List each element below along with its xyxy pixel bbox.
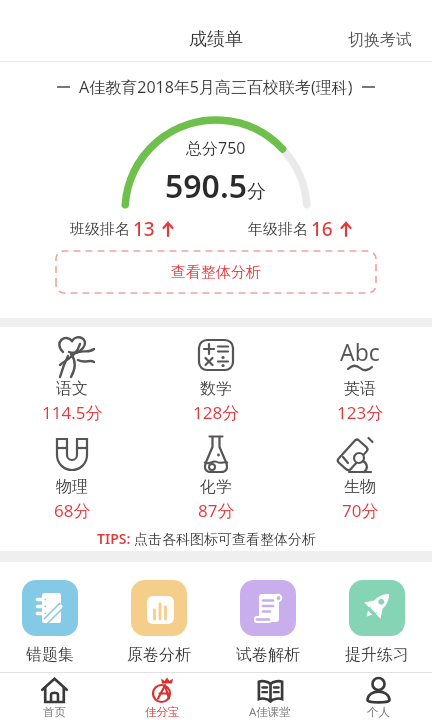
staticText: 成绩单 [189, 28, 243, 51]
staticText: 13 [133, 216, 155, 242]
staticText: 原卷分析 [127, 645, 191, 665]
staticText: 68分 [54, 499, 91, 522]
staticText: 数学 [200, 379, 232, 399]
staticText: 123分 [337, 401, 384, 424]
staticText: 切换考试 [348, 30, 412, 50]
button[interactable]: 个人 [324, 672, 432, 720]
staticText: 年级排名 [248, 220, 308, 239]
staticText: 佳分宝 [145, 705, 180, 719]
staticText: 128分 [193, 401, 240, 424]
staticText: 英语 [344, 379, 376, 399]
staticText: 个人 [367, 705, 390, 719]
button[interactable]: 提升练习 [349, 580, 405, 666]
staticText: 班级排名 [70, 220, 130, 239]
button[interactable]: 切换考试 [348, 27, 412, 53]
staticText: TIPS: 点击各科图标可查看整体分析 [97, 529, 316, 548]
staticText: A佳教育2018年5月高三百校联考(理科) [79, 76, 353, 98]
button[interactable]: 试卷解析 [240, 580, 296, 666]
button[interactable]: 查看整体分析 [55, 250, 377, 294]
staticText: 试卷解析 [236, 645, 300, 665]
button[interactable]: Abc [288, 327, 432, 425]
button[interactable]: 语文 [0, 327, 144, 425]
staticText: 590.5分 [165, 164, 267, 200]
button[interactable]: 物理 [0, 425, 144, 523]
staticText: 87分 [198, 499, 235, 522]
button[interactable]: A佳课堂 [216, 672, 324, 720]
staticText: 语文 [56, 379, 88, 399]
staticText: Abc [340, 336, 380, 367]
button[interactable]: 生物 [288, 425, 432, 523]
button[interactable]: 首页 [0, 672, 108, 720]
button[interactable]: 原卷分析 [131, 580, 187, 666]
staticText: 114.5分 [42, 401, 103, 424]
staticText: 生物 [344, 477, 376, 497]
staticText: 16 [311, 216, 333, 242]
button[interactable]: 错题集 [22, 580, 78, 666]
button[interactable]: 数学 [144, 327, 288, 425]
staticText: 查看整体分析 [171, 263, 261, 282]
staticText: 化学 [200, 477, 232, 497]
staticText: A佳课堂 [249, 704, 291, 719]
button[interactable]: 化学 [144, 425, 288, 523]
staticText: 首页 [43, 705, 66, 719]
staticText: 70分 [342, 499, 379, 522]
staticText: 物理 [56, 477, 88, 497]
button[interactable]: 佳分宝 [108, 672, 216, 720]
staticText: 总分750 [186, 137, 246, 157]
staticText: 错题集 [26, 645, 74, 665]
staticText: 提升练习 [345, 645, 409, 665]
